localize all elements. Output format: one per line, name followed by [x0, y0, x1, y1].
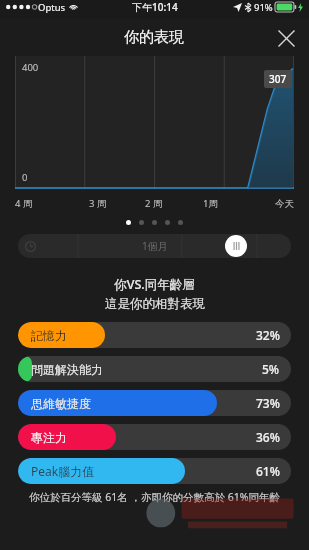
staticText: 400 — [22, 61, 39, 74]
staticText: 你的表現 — [124, 28, 184, 47]
button[interactable]: Close — [273, 25, 299, 51]
staticText: 1個月 — [142, 239, 168, 253]
button[interactable]: Slider handle — [225, 235, 247, 257]
staticText: 你位於百分等級 61名 ，亦即你的分數高於 61%同年齡 — [29, 490, 280, 504]
staticText: Optus — [38, 1, 66, 14]
staticText: 0 — [22, 171, 28, 184]
staticText: 3 周 — [89, 197, 107, 210]
staticText: 記憶力 — [31, 328, 67, 343]
button[interactable]: Peak腦力值 — [18, 458, 291, 484]
button[interactable]: 思維敏捷度 — [18, 390, 291, 416]
staticText: 問題解決能力 — [31, 362, 103, 377]
staticText: 61% — [256, 463, 280, 479]
staticText: 4 周 — [15, 197, 33, 210]
staticText: 32% — [256, 327, 280, 343]
button[interactable]: 記憶力 — [18, 322, 291, 348]
staticText: 下午10:14 — [132, 0, 178, 14]
button[interactable]: Time range — [18, 234, 291, 258]
staticText: 2 周 — [145, 197, 163, 210]
staticText: 1周 — [203, 197, 218, 210]
staticText: 91% — [254, 1, 273, 14]
staticText: 307 — [269, 72, 287, 86]
staticText: 思維敏捷度 — [31, 396, 91, 411]
staticText: 今天 — [275, 198, 294, 210]
staticText: 73% — [256, 395, 280, 411]
button[interactable]: 問題解決能力 — [18, 356, 291, 382]
staticText: 你VS.同年齡層 — [114, 276, 195, 293]
staticText: 這是你的相對表現 — [105, 296, 205, 312]
button[interactable]: 專注力 — [18, 424, 291, 450]
staticText: 專注力 — [31, 430, 67, 445]
other: Time range — [25, 241, 36, 252]
staticText: Peak腦力值 — [31, 463, 95, 479]
staticText: 36% — [256, 429, 280, 445]
staticText: 5% — [262, 361, 280, 377]
